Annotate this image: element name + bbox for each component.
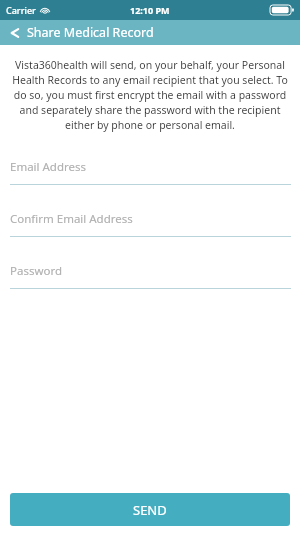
button[interactable]: Back	[0, 22, 162, 43]
staticText: Share Medical Record	[27, 24, 154, 41]
other: Back	[10, 26, 20, 40]
staticText: SEND	[133, 501, 167, 519]
staticText: Confirm Email Address	[10, 211, 133, 227]
staticText: Password	[10, 263, 63, 279]
staticText: Email Address	[10, 159, 87, 175]
button[interactable]: Password	[0, 263, 300, 289]
button[interactable]: Confirm Email Address	[0, 211, 300, 237]
staticText: 12:10 PM	[130, 4, 170, 16]
button[interactable]: Email Address	[0, 159, 300, 185]
staticText: Vista360health will send, on your behalf…	[9, 58, 291, 132]
staticText: Carrier	[6, 4, 36, 16]
button[interactable]: SEND	[10, 493, 290, 526]
